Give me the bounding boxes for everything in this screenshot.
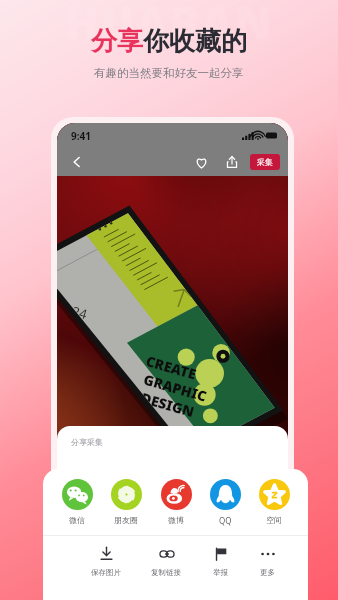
staticText: QQ xyxy=(219,515,232,526)
staticText: 分享 xyxy=(91,25,143,58)
button[interactable]: 空间 xyxy=(257,479,291,525)
staticText: 分享采集 xyxy=(71,437,103,447)
staticText: 微博 xyxy=(168,515,184,525)
button[interactable]: 朋友圈 xyxy=(109,479,143,525)
button[interactable]: Like xyxy=(190,151,212,173)
button[interactable]: 微博 xyxy=(159,479,193,525)
button[interactable]: Back xyxy=(66,151,88,173)
staticText: 微信 xyxy=(69,515,85,525)
button[interactable]: 举报 xyxy=(212,545,229,577)
staticText: 你收藏的 xyxy=(143,25,247,58)
staticText: 更多 xyxy=(260,568,275,577)
staticText: 举报 xyxy=(213,568,228,577)
button[interactable]: Share xyxy=(221,151,243,173)
button[interactable]: 采集 xyxy=(257,154,273,170)
staticText: HUABAN xyxy=(65,0,274,52)
button[interactable]: QQ xyxy=(208,479,242,526)
button[interactable]: 更多 xyxy=(259,545,276,577)
staticText: 有趣的当然要和好友一起分享 xyxy=(94,66,244,80)
staticText: 朋友圈 xyxy=(114,515,138,525)
staticText: 采集 xyxy=(257,157,273,167)
staticText: 空间 xyxy=(266,515,282,525)
button[interactable]: 复制链接 xyxy=(151,545,181,577)
button[interactable]: 保存图片 xyxy=(91,545,121,577)
staticText: 复制链接 xyxy=(151,568,181,577)
staticText: 保存图片 xyxy=(91,568,121,577)
button[interactable]: 微信 xyxy=(60,479,94,525)
staticText: 9:41 xyxy=(71,129,91,143)
